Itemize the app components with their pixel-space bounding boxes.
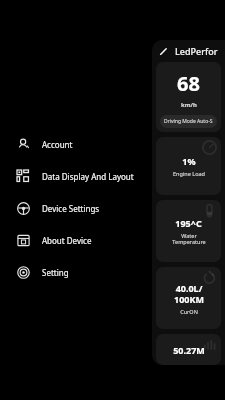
other: Edit <box>159 47 168 56</box>
staticText: 1% <box>182 155 196 167</box>
staticText: LedPerform <box>175 45 225 57</box>
staticText: 50.27M <box>173 344 205 356</box>
staticText: Driving Mode Auto-S <box>164 118 213 125</box>
button[interactable]: 195^C <box>156 200 221 262</box>
staticText: km/h <box>181 101 197 109</box>
staticText: Engine Load <box>173 170 205 177</box>
button[interactable]: Driving Mode Auto-S <box>160 115 217 128</box>
staticText: Account <box>42 139 73 150</box>
staticText: Data Display And Layout <box>42 171 134 182</box>
staticText: CurON <box>180 308 198 315</box>
button[interactable]: 50.27M <box>156 334 221 365</box>
button[interactable]: Setting <box>0 256 152 288</box>
button[interactable]: 68 <box>156 62 221 132</box>
button[interactable]: Edit <box>152 40 225 62</box>
button[interactable]: Data Display And Layout <box>0 160 152 192</box>
staticText: 195^C <box>175 217 202 229</box>
staticText: 68 <box>177 70 200 97</box>
button[interactable]: 40.0L/ 100KM <box>156 267 221 329</box>
button[interactable]: About Device <box>0 224 152 256</box>
button[interactable]: 1% <box>156 137 221 195</box>
button[interactable]: Account <box>0 128 152 160</box>
staticText: Setting <box>42 267 69 278</box>
button[interactable]: Device Settings <box>0 192 152 224</box>
staticText: Water Temperature <box>172 232 206 246</box>
staticText: About Device <box>42 235 92 246</box>
staticText: 40.0L/ 100KM <box>174 282 204 305</box>
staticText: Device Settings <box>42 203 100 214</box>
